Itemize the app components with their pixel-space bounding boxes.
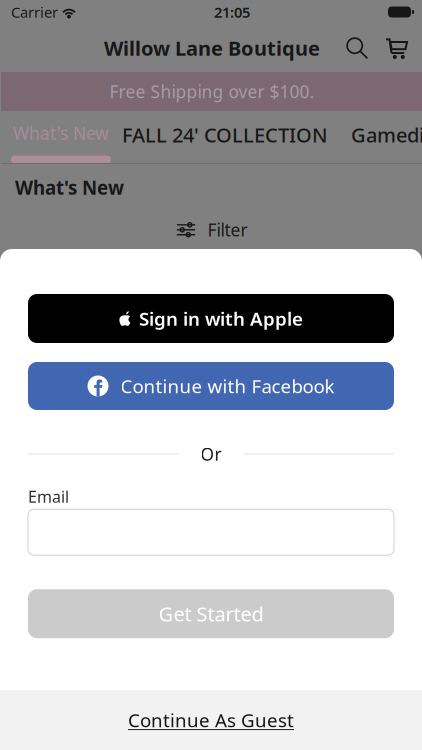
button[interactable]: Continue As Guest [0, 690, 422, 750]
staticText: Gamedi [351, 121, 422, 148]
staticText: Continue As Guest [128, 708, 294, 732]
staticText: What's New [15, 175, 124, 200]
staticText: Or [200, 442, 221, 465]
staticText: Email [28, 486, 69, 507]
staticText: FALL 24' COLLECTION [122, 121, 328, 148]
staticText: Get Started [158, 600, 263, 627]
button[interactable]: What's New [0, 110, 122, 163]
staticText: Carrier [11, 2, 58, 22]
button[interactable]: Get Started [28, 589, 394, 638]
staticText: Sign in with Apple [139, 306, 303, 331]
button[interactable]: Continue with Facebook [28, 362, 394, 410]
button[interactable]: Gamedi [328, 110, 422, 163]
button[interactable]: Sign in with Apple [28, 294, 394, 343]
button[interactable]: Shopping cart [371, 34, 411, 62]
staticText: Willow Lane Boutique [104, 35, 320, 61]
staticText: Filter [207, 218, 247, 241]
staticText: Free Shipping over $100. [109, 80, 314, 103]
button[interactable]: FALL 24' COLLECTION [122, 110, 328, 163]
button[interactable]: Search [343, 34, 371, 62]
staticText: What's New [13, 121, 109, 144]
staticText: 21:05 [214, 2, 250, 22]
button[interactable]: Filter [1, 216, 422, 244]
staticText: Continue with Facebook [120, 374, 334, 398]
